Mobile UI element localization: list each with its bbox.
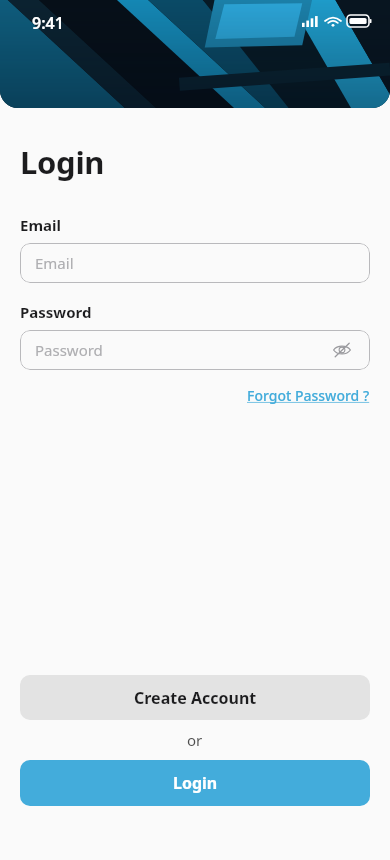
- staticText: 9:41: [32, 12, 64, 34]
- button[interactable]: Create Account: [20, 675, 370, 720]
- staticText: Login: [173, 772, 218, 794]
- button[interactable]: Email: [20, 243, 370, 283]
- button[interactable]: Show password: [329, 337, 355, 363]
- staticText: Password: [20, 302, 92, 322]
- staticText: or: [187, 730, 203, 750]
- staticText: Login: [20, 141, 105, 183]
- button[interactable]: Forgot Password ?: [247, 384, 370, 407]
- button[interactable]: Login: [20, 760, 370, 806]
- staticText: Email: [35, 253, 74, 273]
- staticText: Password: [35, 340, 103, 360]
- button[interactable]: Password: [20, 330, 370, 370]
- staticText: Create Account: [134, 687, 257, 709]
- staticText: Email: [20, 215, 61, 235]
- staticText: Forgot Password ?: [247, 386, 370, 405]
